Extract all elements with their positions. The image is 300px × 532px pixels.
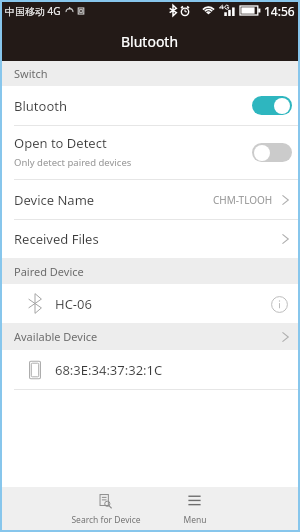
button[interactable]: 68:3E:34:37:32:1C — [2, 350, 298, 389]
staticText: Search for Device — [71, 514, 141, 526]
staticText: Open to Detect — [14, 134, 107, 152]
button[interactable]: Switch on — [252, 96, 292, 115]
button[interactable]: HC-06 — [2, 284, 298, 323]
button[interactable]: Search for Device — [61, 487, 150, 530]
button[interactable]: Blutooth — [2, 86, 298, 125]
staticText: Device Name — [14, 191, 95, 209]
staticText: 68:3E:34:37:32:1C — [55, 361, 163, 379]
staticText: Available Device — [14, 329, 98, 344]
staticText: 中国移动 4G — [5, 4, 61, 18]
staticText: 14:56 — [264, 3, 295, 19]
button[interactable]: Device Name — [2, 180, 298, 219]
button[interactable]: Received Files — [2, 220, 298, 258]
button[interactable]: Open to Detect — [2, 126, 298, 179]
staticText: Switch — [14, 66, 48, 81]
staticText: Only detect paired devices — [14, 156, 132, 169]
button[interactable]: Menu — [150, 487, 239, 530]
staticText: Blutooth — [14, 97, 67, 115]
staticText: Menu — [183, 514, 207, 526]
staticText: Received Files — [14, 230, 99, 248]
staticText: Paired Device — [14, 264, 84, 279]
button[interactable]: Device info — [269, 294, 289, 314]
staticText: CHM-TLOOH — [213, 193, 273, 207]
staticText: HC-06 — [55, 295, 92, 313]
staticText: Blutooth — [121, 32, 179, 51]
button[interactable]: Switch off — [252, 143, 292, 162]
